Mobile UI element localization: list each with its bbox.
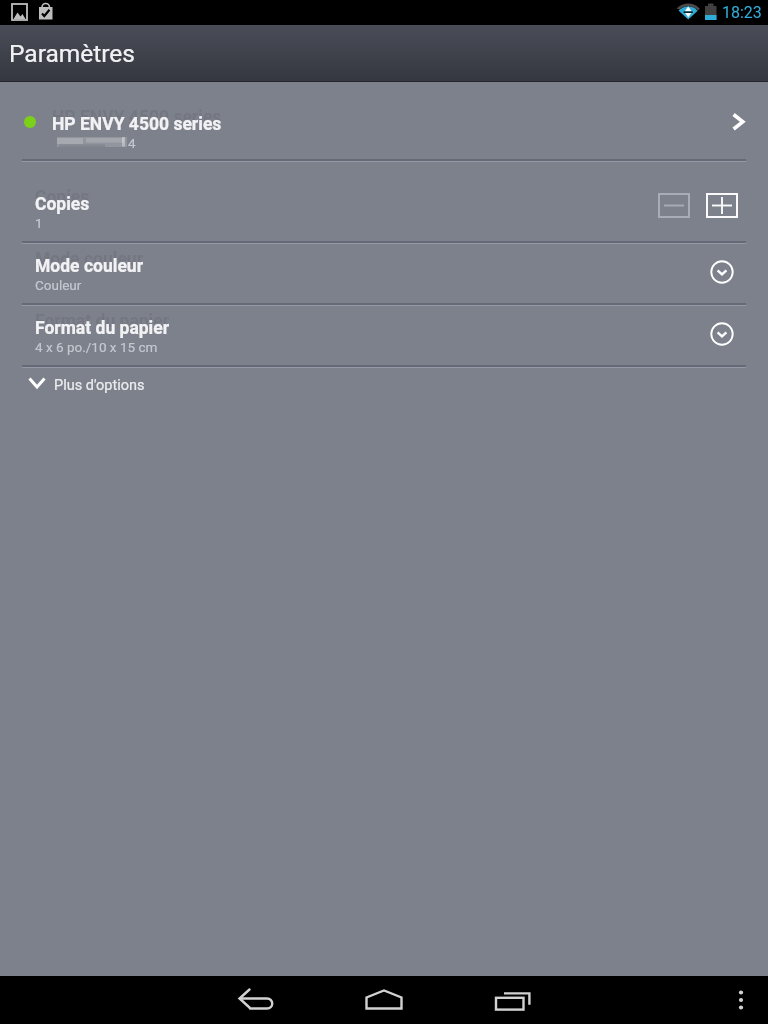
staticText: 4 x 6 po./10 x 15 cm: [35, 339, 158, 355]
button[interactable]: Increase copies: [706, 193, 738, 218]
button[interactable]: More options: [717, 976, 765, 1024]
staticText: Copies: [35, 187, 90, 208]
button[interactable]: Format du papier: [0, 304, 768, 365]
button[interactable]: Mode couleur: [0, 242, 768, 303]
staticText: Mode couleur: [35, 249, 144, 270]
other: Mode couleur options: [710, 260, 734, 284]
staticText: 1: [35, 215, 43, 231]
button[interactable]: Back: [216, 976, 296, 1024]
button[interactable]: Decrease copies: [658, 193, 690, 218]
button[interactable]: Recent apps: [472, 976, 552, 1024]
other: Select printer: [716, 99, 760, 143]
button[interactable]: Plus d'options: [0, 368, 768, 402]
staticText: HP ENVY 4500 series: [52, 107, 222, 128]
staticText: Couleur: [35, 277, 82, 293]
button[interactable]: HP ENVY 4500 series: [0, 83, 768, 159]
staticText: Paramètres: [9, 39, 136, 68]
staticText: Format du papier: [35, 311, 170, 332]
other: Format du papier options: [710, 322, 734, 346]
staticText: Copies: [35, 194, 90, 215]
staticText: Plus d'options: [54, 377, 145, 394]
staticText: 18:23: [722, 3, 762, 22]
staticText: 4: [128, 135, 136, 151]
staticText: Mode couleur: [35, 256, 144, 277]
staticText: Format du papier: [35, 318, 170, 339]
button[interactable]: Home: [344, 976, 424, 1024]
staticText: HP ENVY 4500 series: [52, 114, 222, 135]
